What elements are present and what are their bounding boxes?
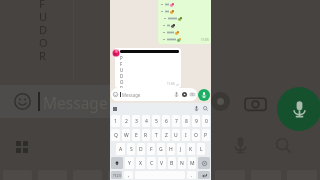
staticText: H xyxy=(169,146,173,153)
staticText: 5 xyxy=(155,118,158,125)
staticText: Q xyxy=(114,132,118,139)
button[interactable]: F xyxy=(147,143,155,155)
staticText: 9 xyxy=(195,118,198,125)
staticText: Z xyxy=(165,132,168,139)
staticText: U xyxy=(39,9,48,22)
button[interactable]: 4 xyxy=(142,115,150,127)
staticText: P xyxy=(204,132,208,139)
staticText: Message xyxy=(122,92,141,98)
staticText: C xyxy=(150,160,154,167)
staticText: P xyxy=(120,55,123,61)
button[interactable]: O xyxy=(192,129,200,141)
staticText: Y xyxy=(128,160,131,167)
staticText: 11:05 xyxy=(201,38,209,42)
staticText: F xyxy=(120,61,123,67)
button[interactable]: N xyxy=(178,157,186,169)
staticText: 1 xyxy=(114,118,117,125)
button[interactable]: J xyxy=(177,143,185,155)
staticText: 6 xyxy=(165,118,168,125)
staticText: L xyxy=(200,146,203,153)
button[interactable]: I xyxy=(182,129,190,141)
staticText: 3 xyxy=(135,118,138,125)
staticText: 8 xyxy=(185,118,188,125)
staticText: D xyxy=(120,73,124,79)
staticText: U xyxy=(120,67,124,73)
button[interactable]: 9 xyxy=(192,115,200,127)
staticText: R xyxy=(39,48,46,61)
button[interactable]: M xyxy=(188,157,196,169)
button[interactable]: D xyxy=(137,143,145,155)
staticText: T xyxy=(155,132,158,139)
button[interactable]: W xyxy=(122,129,130,141)
button[interactable]: 0 xyxy=(202,115,210,127)
staticText: O xyxy=(120,79,124,85)
button[interactable]: , xyxy=(124,171,133,179)
button[interactable]: G xyxy=(157,143,165,155)
button[interactable]: Z xyxy=(162,129,170,141)
button[interactable]: 2 xyxy=(122,115,130,127)
button[interactable]: Shift xyxy=(111,157,123,169)
button[interactable]: S xyxy=(127,143,135,155)
button[interactable]: R xyxy=(142,129,150,141)
button[interactable]: Backspace xyxy=(198,157,210,169)
button[interactable]: . xyxy=(187,171,196,179)
button[interactable]: Y xyxy=(125,157,134,169)
staticText: I xyxy=(185,132,187,139)
staticText: K xyxy=(189,146,193,153)
button[interactable]: E xyxy=(132,129,140,141)
button[interactable]: 3 xyxy=(132,115,140,127)
staticText: 4 xyxy=(145,118,148,125)
staticText: W xyxy=(124,132,129,139)
staticText: Message xyxy=(43,92,108,113)
button[interactable]: Symbols xyxy=(111,171,122,179)
button[interactable]: 5 xyxy=(152,115,160,127)
staticText: 0 xyxy=(205,118,208,125)
button[interactable]: 1 xyxy=(111,115,120,127)
staticText: S xyxy=(130,146,133,153)
staticText: J xyxy=(180,146,182,153)
button[interactable]: L xyxy=(197,143,205,155)
staticText: M xyxy=(190,160,195,167)
staticText: N xyxy=(180,160,184,167)
staticText: A xyxy=(119,146,123,153)
button[interactable]: 8 xyxy=(182,115,190,127)
staticText: , xyxy=(128,172,130,179)
button[interactable]: Search xyxy=(203,106,208,111)
button[interactable]: H xyxy=(167,143,175,155)
button[interactable]: P xyxy=(202,129,210,141)
button[interactable]: Message xyxy=(111,88,197,101)
button[interactable]: Q xyxy=(111,129,120,141)
button[interactable]: 6 xyxy=(162,115,170,127)
staticText: B xyxy=(170,160,174,167)
staticText: R xyxy=(144,132,148,139)
button[interactable]: X xyxy=(136,157,145,169)
button[interactable]: A xyxy=(116,143,125,155)
staticText: O xyxy=(194,132,198,139)
button[interactable]: U xyxy=(172,129,180,141)
button[interactable]: Voice input xyxy=(194,106,199,111)
staticText: O xyxy=(39,35,48,48)
staticText: 11:06 xyxy=(167,82,175,86)
staticText: F xyxy=(39,0,45,9)
button[interactable]: V xyxy=(158,157,166,169)
staticText: . xyxy=(191,172,193,179)
button[interactable]: Record voice message xyxy=(198,89,210,101)
staticText: U xyxy=(174,132,178,139)
staticText: V xyxy=(160,160,164,167)
button[interactable]: T xyxy=(152,129,160,141)
staticText: X xyxy=(139,160,142,167)
staticText: R xyxy=(120,85,123,88)
button[interactable]: 7 xyxy=(172,115,180,127)
staticText: E xyxy=(135,132,138,139)
button[interactable]: C xyxy=(147,157,156,169)
staticText: D xyxy=(139,146,143,153)
button[interactable]: Enter xyxy=(198,171,210,179)
button[interactable]: B xyxy=(168,157,176,169)
staticText: D xyxy=(39,22,48,35)
staticText: 2 xyxy=(125,118,128,125)
staticText: F xyxy=(150,146,153,153)
staticText: G xyxy=(159,146,163,153)
button[interactable]: K xyxy=(187,143,195,155)
